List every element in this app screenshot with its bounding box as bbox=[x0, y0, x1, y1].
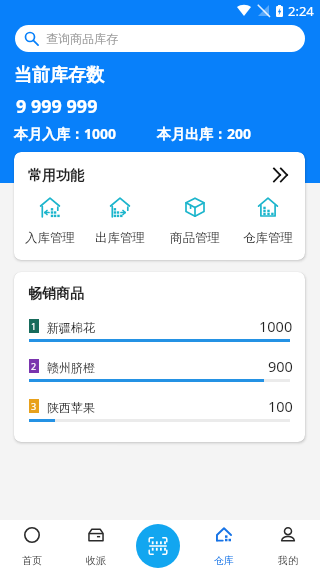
staticText: 900 bbox=[268, 356, 293, 373]
staticText: 查询商品库存 bbox=[46, 31, 118, 46]
staticText: 商品管理 bbox=[170, 230, 220, 246]
button[interactable]: 仓库管理 bbox=[243, 197, 293, 246]
staticText: 100 bbox=[268, 396, 293, 413]
staticText: 1 bbox=[31, 320, 37, 332]
staticText: 本月入库：1000 bbox=[14, 124, 117, 143]
staticText: 新疆棉花 bbox=[47, 320, 95, 335]
staticText: 我的 bbox=[278, 554, 298, 567]
staticText: 当前库存数 bbox=[14, 64, 104, 87]
staticText: 2:24 bbox=[288, 2, 314, 20]
button[interactable]: 入库管理 bbox=[25, 197, 75, 246]
button[interactable]: 仓库 bbox=[192, 520, 256, 572]
button[interactable]: 查询商品库存 bbox=[15, 25, 305, 52]
staticText: 陕西苹果 bbox=[47, 400, 95, 415]
staticText: 仓库管理 bbox=[243, 230, 293, 246]
staticText: 本月出库：200 bbox=[157, 124, 252, 143]
button[interactable]: 我的 bbox=[256, 520, 320, 572]
staticText: 入库管理 bbox=[25, 230, 75, 246]
button[interactable]: 商品管理 bbox=[170, 197, 220, 246]
staticText: 畅销商品 bbox=[28, 285, 84, 303]
staticText: 出库管理 bbox=[95, 230, 145, 246]
staticText: 9 999 999 bbox=[16, 94, 98, 119]
staticText: 1000 bbox=[259, 316, 293, 333]
button[interactable]: 更多 bbox=[267, 162, 293, 188]
staticText: 3 bbox=[31, 400, 37, 412]
staticText: 首页 bbox=[22, 554, 42, 567]
staticText: 收派 bbox=[86, 554, 106, 567]
button[interactable]: 出库管理 bbox=[95, 197, 145, 246]
staticText: 仓库 bbox=[214, 554, 234, 567]
button[interactable]: 首页 bbox=[0, 520, 64, 572]
button[interactable]: 扫一扫 bbox=[136, 524, 180, 568]
button[interactable]: 收派 bbox=[64, 520, 128, 572]
staticText: 2 bbox=[31, 360, 37, 372]
staticText: 常用功能 bbox=[28, 167, 84, 185]
staticText: 赣州脐橙 bbox=[47, 360, 95, 375]
